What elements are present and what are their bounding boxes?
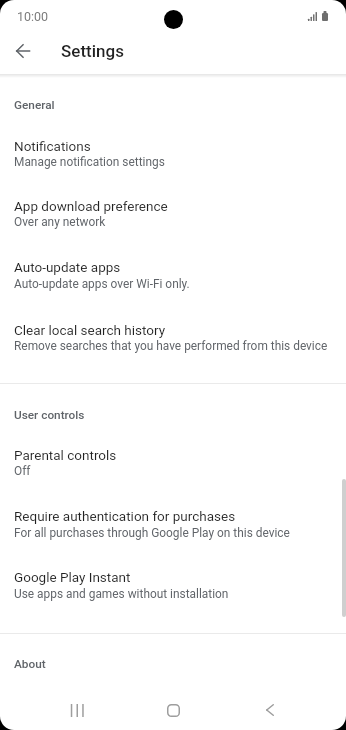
staticText: Google Play Instant [14,569,131,585]
staticText: Off [14,464,31,478]
button[interactable]: Home [151,688,195,730]
staticText: Require authentication for purchases [14,508,236,524]
staticText: Notifications [14,138,91,154]
button[interactable] [0,252,346,314]
button[interactable]: Recent apps [54,688,98,730]
staticText: Over any network [14,215,106,229]
button[interactable] [0,314,346,376]
staticText: Auto-update apps over Wi-Fi only. [14,277,190,291]
button[interactable] [0,500,346,562]
staticText: Clear local search history [14,322,166,338]
staticText: App download preference [14,198,168,214]
button[interactable]: Back [6,33,41,68]
staticText: General [14,98,55,112]
staticText: Manage notification settings [14,155,165,169]
staticText: Remove searches that you have performed … [14,339,328,353]
button[interactable] [0,130,346,190]
button[interactable] [0,562,346,624]
button[interactable] [0,190,346,252]
button[interactable]: Back [250,688,294,730]
staticText: Settings [61,41,124,61]
staticText: Parental controls [14,447,117,463]
staticText: 10:00 [17,9,49,24]
staticText: User controls [14,408,85,422]
staticText: For all purchases through Google Play on… [14,526,290,540]
staticText: Auto-update apps [14,259,121,275]
button[interactable] [0,440,346,500]
staticText: Use apps and games without installation [14,587,229,601]
staticText: About [14,657,46,671]
